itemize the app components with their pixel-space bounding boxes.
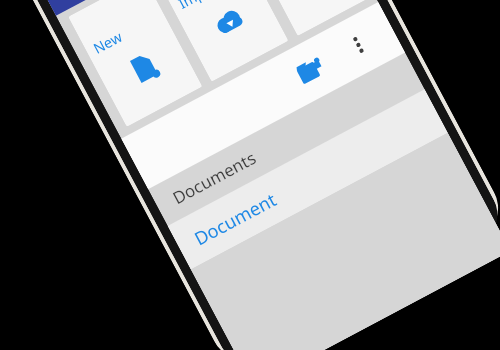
- staticText: Documents: [168, 145, 261, 209]
- button[interactable]: Document: [168, 89, 448, 269]
- button[interactable]: New document: [68, 0, 202, 127]
- button[interactable]: Open file: [239, 0, 375, 36]
- button[interactable]: New folder: [280, 41, 340, 100]
- staticText: New document: [90, 8, 161, 58]
- button[interactable]: Import document: [153, 0, 288, 82]
- staticText: Import document: [175, 0, 247, 13]
- staticText: Document: [190, 187, 280, 251]
- button[interactable]: More options: [328, 15, 388, 75]
